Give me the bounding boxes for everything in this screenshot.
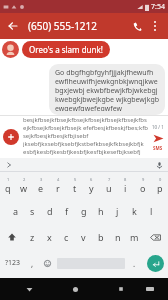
- button[interactable]: 3: [32, 172, 49, 198]
- staticText: s: [30, 205, 35, 217]
- button[interactable]: 0: [151, 172, 168, 198]
- button[interactable]: 5: [66, 172, 83, 198]
- button[interactable]: x: [41, 224, 58, 250]
- staticText: i: [124, 182, 127, 194]
- staticText: z: [30, 231, 35, 243]
- staticText: b: [98, 231, 104, 243]
- staticText: o: [140, 182, 146, 194]
- button[interactable]: Oreo's a slam dunk!: [22, 41, 110, 58]
- staticText: v: [81, 231, 86, 243]
- staticText: 8: [124, 177, 127, 182]
- button[interactable]: f: [58, 198, 75, 224]
- staticText: 7: [108, 177, 111, 182]
- button[interactable]: Shift: [0, 224, 24, 250]
- staticText: SMS: [153, 145, 163, 151]
- button[interactable]: z: [24, 224, 41, 250]
- staticText: w: [20, 182, 28, 194]
- button[interactable]: Recents: [112, 280, 130, 298]
- button[interactable]: s: [24, 198, 41, 224]
- button[interactable]: ,: [25, 250, 40, 276]
- staticText: r: [56, 182, 60, 194]
- staticText: 5: [74, 177, 77, 182]
- staticText: e: [38, 182, 44, 194]
- button[interactable]: Backspace: [143, 224, 168, 250]
- button[interactable]: a: [7, 198, 24, 224]
- staticText: ?123: [5, 258, 21, 268]
- staticText: a: [13, 205, 19, 217]
- button[interactable]: k: [126, 198, 143, 224]
- button[interactable]: d: [41, 198, 58, 224]
- button[interactable]: Back: [4, 17, 22, 35]
- button[interactable]: 1: [0, 172, 16, 198]
- staticText: besjkfbsejkfbsejkfbsejkfbsejkfbsejkfbsej…: [23, 116, 148, 158]
- staticText: q: [5, 182, 11, 194]
- button[interactable]: Emoji: [40, 250, 55, 276]
- button[interactable]: l: [143, 198, 160, 224]
- staticText: k: [132, 205, 137, 217]
- staticText: Oreo's a slam dunk!: [29, 44, 103, 55]
- button[interactable]: besjkfbsejkfbsejkfbsejkfbsejkfbsejkfbsej…: [23, 116, 148, 158]
- button[interactable]: 9: [134, 172, 151, 198]
- staticText: 4: [57, 177, 60, 182]
- staticText: (650) 555-1212: [28, 19, 128, 33]
- staticText: 2: [23, 177, 26, 182]
- button[interactable]: Enter: [147, 255, 164, 272]
- button[interactable]: h: [92, 198, 109, 224]
- staticText: j: [116, 205, 119, 217]
- button[interactable]: 8: [117, 172, 134, 198]
- button[interactable]: m: [126, 224, 143, 250]
- button[interactable]: Call: [128, 17, 146, 35]
- button[interactable]: 2: [16, 172, 32, 198]
- staticText: 0: [159, 177, 162, 182]
- button[interactable]: More options: [146, 17, 164, 35]
- staticText: n: [115, 231, 121, 243]
- staticText: y: [89, 182, 94, 194]
- button[interactable]: 7: [100, 172, 117, 198]
- button[interactable]: Home: [66, 280, 84, 298]
- button[interactable]: Switch keyboard: [141, 280, 159, 298]
- staticText: Go dbgfhgbfgyhfjjjakjfhewufh ewflheuwifh…: [55, 68, 159, 111]
- button[interactable]: Voice input: [154, 160, 164, 170]
- staticText: ,: [31, 258, 34, 269]
- button[interactable]: Attach: [3, 129, 19, 145]
- button[interactable]: 6: [83, 172, 100, 198]
- staticText: 10 / 1: [152, 124, 164, 130]
- staticText: 1: [7, 177, 10, 182]
- button[interactable]: 4: [49, 172, 66, 198]
- button[interactable]: Go dbgfhgbfgyhfjjjakjfhewufh ewflheuwifh…: [49, 64, 165, 115]
- button[interactable]: g: [75, 198, 92, 224]
- staticText: u: [106, 182, 112, 194]
- button[interactable]: More suggestions: [4, 160, 14, 170]
- staticText: 3: [40, 177, 43, 182]
- staticText: g: [81, 205, 87, 217]
- button[interactable]: b: [92, 224, 109, 250]
- staticText: 6: [90, 177, 93, 182]
- button[interactable]: Back: [20, 280, 38, 298]
- staticText: f: [65, 205, 69, 217]
- staticText: c: [64, 231, 69, 243]
- button[interactable]: .: [127, 250, 142, 276]
- button[interactable]: v: [75, 224, 92, 250]
- staticText: t: [73, 182, 77, 194]
- button[interactable]: ?123: [0, 250, 25, 276]
- staticText: 9: [142, 177, 145, 182]
- button[interactable]: n: [109, 224, 126, 250]
- staticText: h: [98, 205, 104, 217]
- button[interactable]: c: [58, 224, 75, 250]
- staticText: x: [47, 231, 52, 243]
- button[interactable]: Send: [151, 131, 165, 145]
- staticText: m: [130, 231, 139, 243]
- staticText: .: [133, 258, 136, 269]
- button[interactable]: j: [109, 198, 126, 224]
- staticText: 7:54: [151, 2, 165, 12]
- staticText: d: [47, 205, 53, 217]
- staticText: l: [150, 205, 153, 217]
- staticText: p: [157, 182, 163, 194]
